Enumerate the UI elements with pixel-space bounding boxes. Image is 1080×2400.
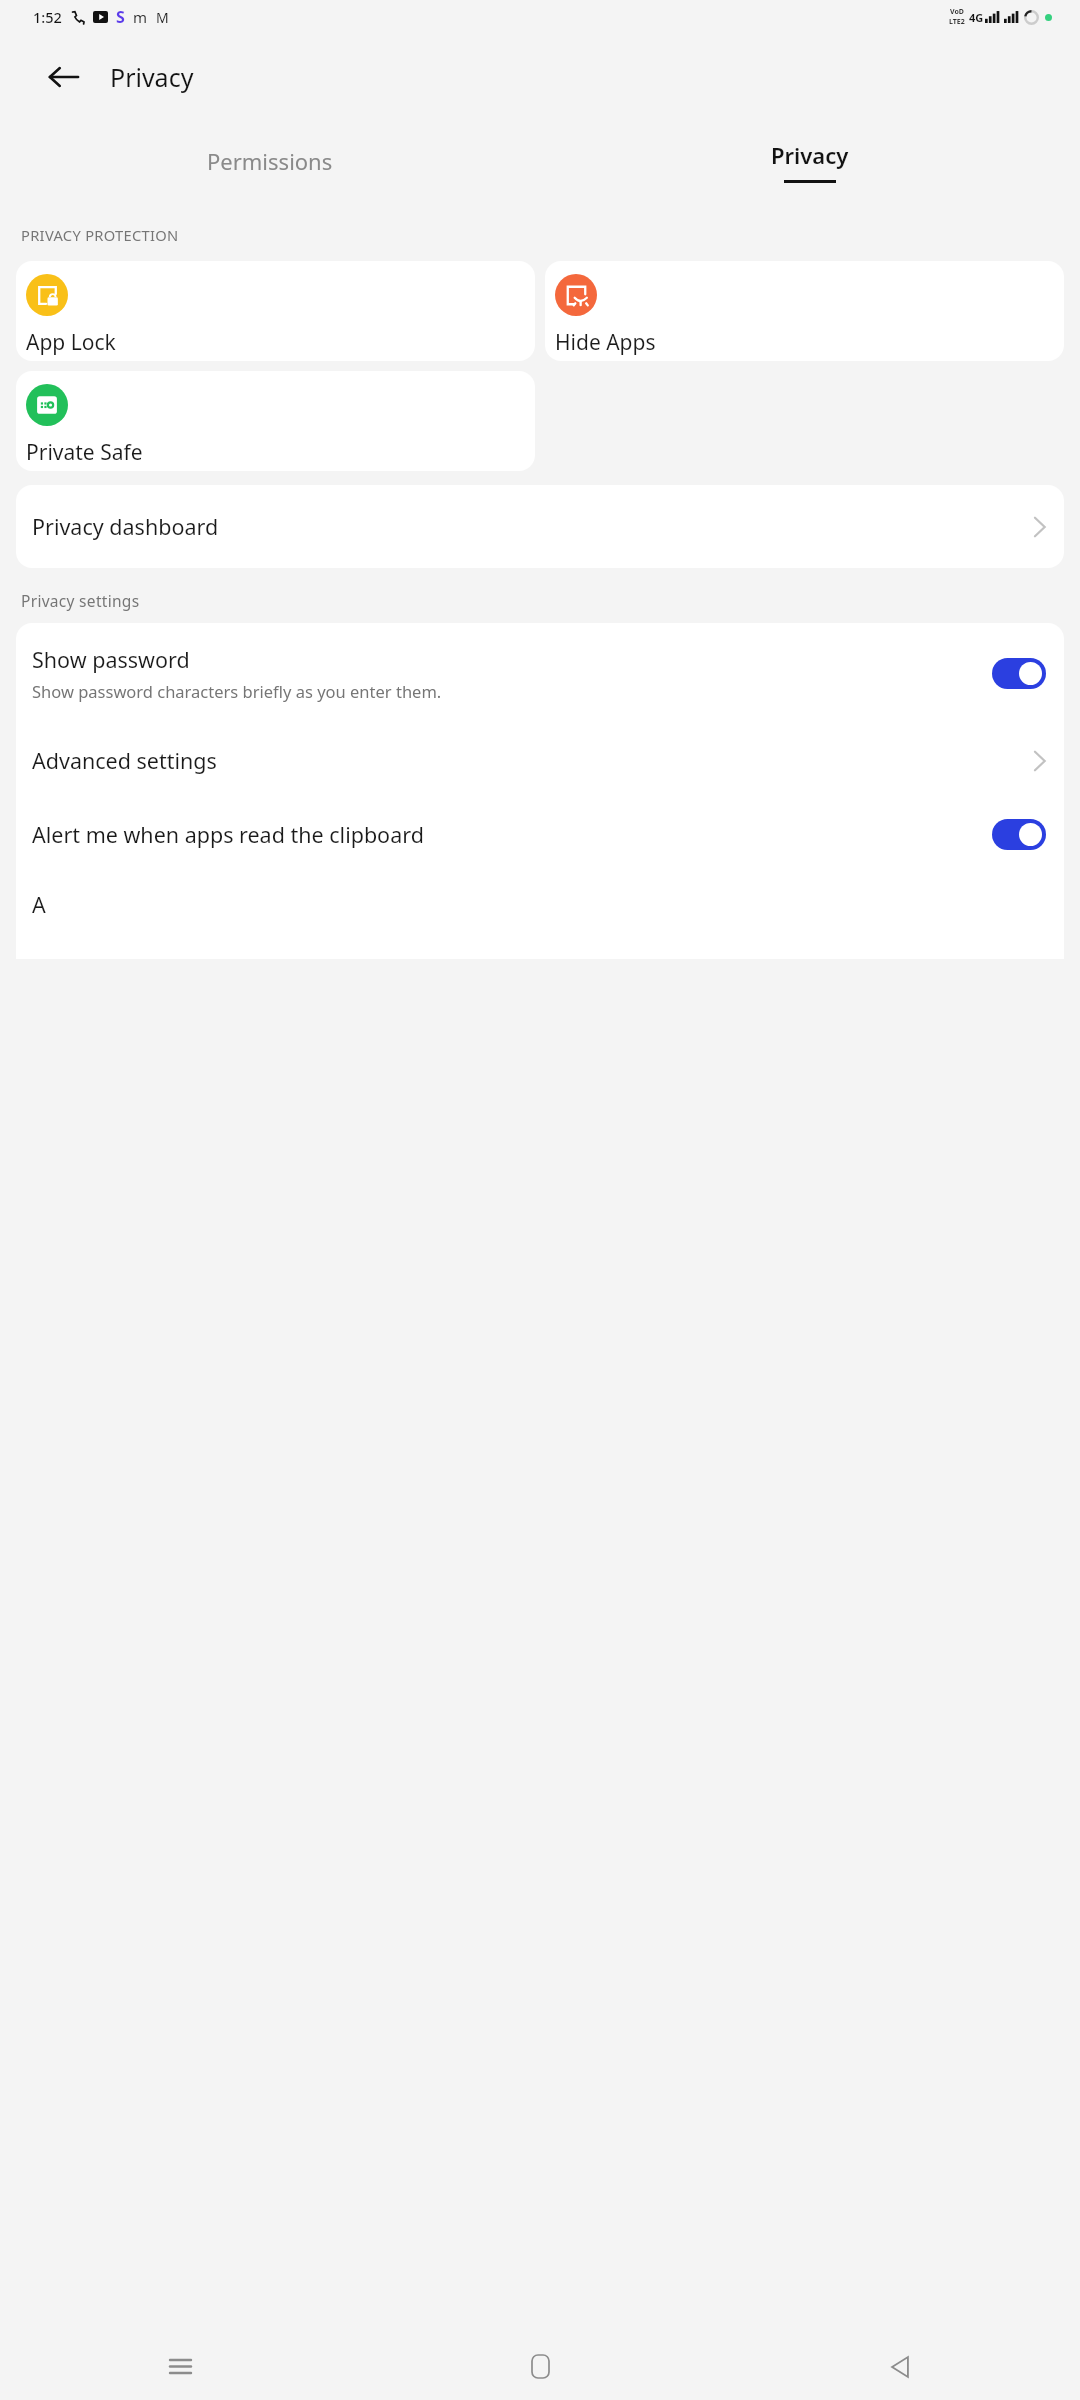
button[interactable]: Private Safe bbox=[16, 371, 535, 471]
staticText: Private Safe bbox=[26, 438, 143, 467]
staticText: 4G bbox=[969, 10, 984, 25]
button[interactable]: Back bbox=[36, 49, 92, 105]
button[interactable]: Privacy dashboard bbox=[16, 485, 1064, 568]
staticText: LTE2 bbox=[949, 17, 965, 27]
button[interactable]: Advanced settings bbox=[32, 720, 1046, 801]
button[interactable]: Toggle bbox=[992, 658, 1046, 689]
staticText: Advanced settings bbox=[32, 746, 1033, 775]
button[interactable]: App Lock bbox=[16, 261, 535, 361]
staticText: Show password bbox=[32, 645, 190, 674]
staticText: Permissions bbox=[207, 146, 333, 176]
button[interactable]: Alert me when apps read the clipboard bbox=[32, 801, 1046, 868]
button[interactable]: Home bbox=[360, 2333, 720, 2400]
staticText: M bbox=[156, 8, 169, 27]
staticText: Privacy bbox=[771, 140, 849, 170]
staticText: 1:52 bbox=[33, 7, 62, 27]
button[interactable]: Back bbox=[720, 2333, 1080, 2400]
staticText: S bbox=[116, 6, 125, 28]
staticText: A bbox=[32, 890, 46, 919]
button[interactable]: Recents bbox=[0, 2333, 360, 2400]
staticText: m bbox=[133, 7, 148, 27]
staticText: Show password characters briefly as you … bbox=[32, 680, 442, 702]
staticText: VoD bbox=[950, 7, 964, 17]
button[interactable]: Privacy bbox=[540, 121, 1080, 201]
button[interactable]: Hide Apps bbox=[545, 261, 1064, 361]
staticText: Privacy bbox=[110, 60, 194, 94]
button[interactable]: Show password bbox=[32, 623, 1046, 720]
staticText: Privacy dashboard bbox=[32, 512, 1033, 541]
button[interactable]: Permissions bbox=[0, 121, 540, 201]
staticText: PRIVACY PROTECTION bbox=[21, 225, 179, 245]
staticText: Privacy settings bbox=[21, 590, 140, 611]
staticText: Hide Apps bbox=[555, 328, 656, 357]
staticText: App Lock bbox=[26, 328, 116, 357]
button[interactable]: Toggle bbox=[992, 819, 1046, 850]
staticText: Alert me when apps read the clipboard bbox=[32, 820, 976, 849]
